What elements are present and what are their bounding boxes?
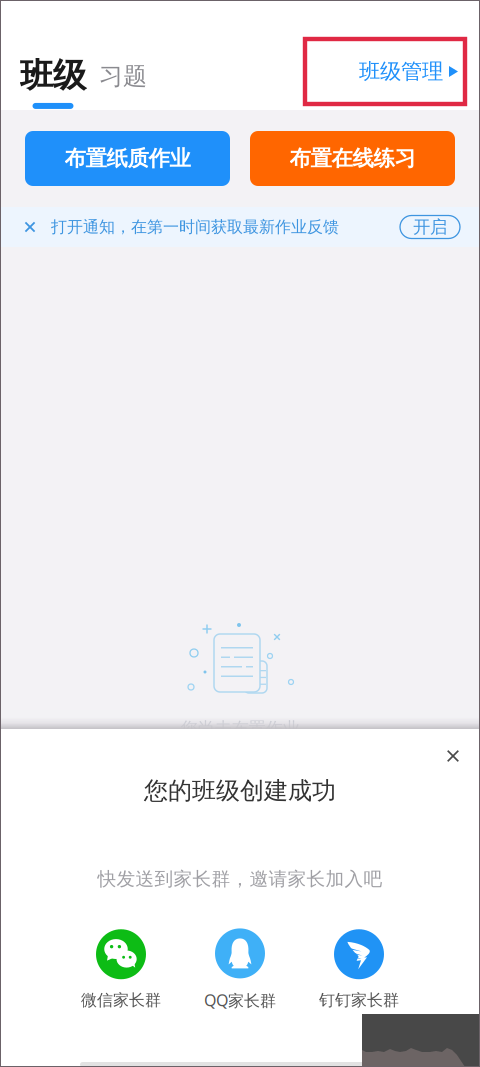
button[interactable]: 关闭	[432, 735, 474, 777]
button[interactable]: 布置在线练习	[250, 131, 455, 186]
staticText: 班级	[20, 55, 86, 96]
staticText: 钉钉家长群	[319, 990, 399, 1010]
staticText: 您的班级创建成功	[144, 776, 336, 805]
button[interactable]: 习题	[91, 61, 155, 109]
button[interactable]: 布置纸质作业	[25, 131, 230, 186]
button[interactable]: QQ家长群	[180, 928, 299, 1011]
staticText: 布置纸质作业	[64, 145, 190, 172]
staticText: 您尚未布置作业	[180, 718, 299, 739]
staticText: 快发送到家长群，邀请家长加入吧	[97, 867, 382, 890]
button[interactable]: 开启	[400, 215, 460, 238]
staticText: 打开通知，在第一时间获取最新作业反馈	[51, 217, 339, 237]
button[interactable]: 关闭通知提示	[16, 207, 44, 247]
button[interactable]: 微信家长群	[61, 929, 180, 1010]
button[interactable]: 班级管理	[305, 39, 465, 104]
staticText: QQ家长群	[204, 989, 276, 1011]
staticText: 微信家长群	[81, 990, 161, 1010]
button[interactable]: 班级	[15, 55, 91, 109]
staticText: 习题	[99, 61, 147, 91]
staticText: 班级管理	[359, 58, 443, 85]
staticText: 布置在线练习	[289, 145, 415, 172]
staticText: 开启	[413, 216, 447, 238]
button[interactable]: 钉钉家长群	[299, 929, 418, 1010]
